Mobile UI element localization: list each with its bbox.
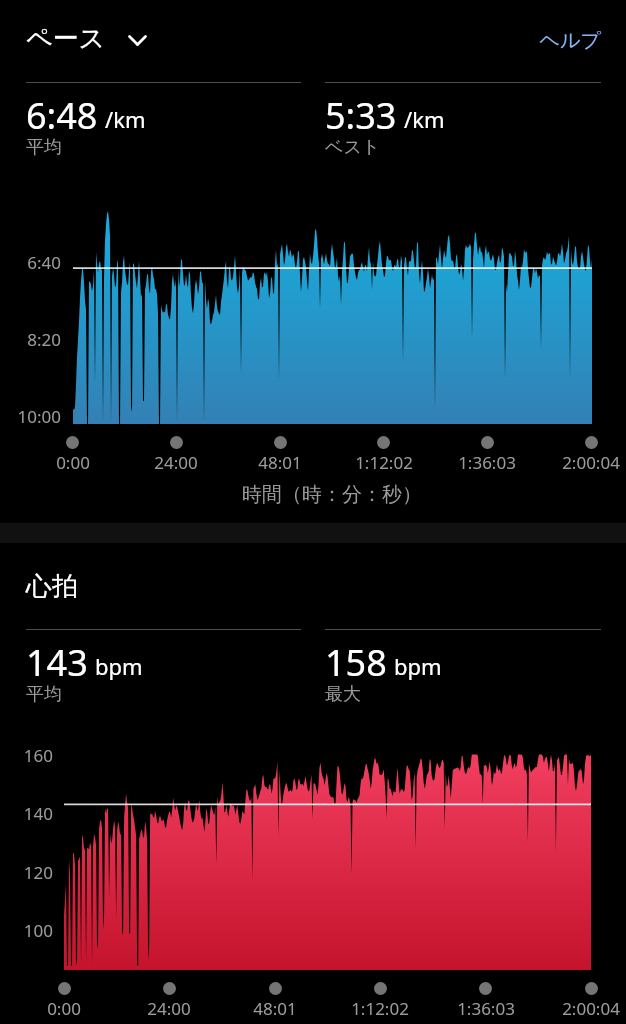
staticText: bpm	[394, 651, 442, 681]
staticText: 140	[0, 802, 53, 825]
staticText: 158	[325, 638, 387, 687]
staticText: 平均	[26, 683, 62, 706]
staticText: 最大	[325, 683, 361, 706]
button[interactable]: ペース	[26, 22, 144, 55]
staticText: /km	[404, 104, 445, 134]
staticText: 100	[0, 919, 53, 942]
staticText: 120	[0, 861, 53, 884]
staticText: ペース	[26, 22, 106, 55]
staticText: 6:48	[26, 91, 98, 140]
staticText: 1:12:02	[334, 451, 434, 474]
staticText: 48:01	[225, 997, 325, 1020]
staticText: /km	[105, 104, 146, 134]
staticText: bpm	[95, 651, 143, 681]
staticText: ベスト	[325, 136, 381, 159]
staticText: 1:36:03	[437, 451, 537, 474]
staticText: 0:00	[23, 451, 123, 474]
staticText: 時間（時：分：秒）	[182, 482, 482, 507]
staticText: 143	[26, 638, 88, 687]
staticText: 8:20	[0, 328, 61, 351]
staticText: 10:00	[0, 405, 61, 428]
staticText: 0:00	[14, 997, 114, 1020]
staticText: 6:40	[0, 251, 61, 274]
staticText: 2:00:04	[541, 451, 626, 474]
staticText: 24:00	[126, 451, 226, 474]
staticText: 心拍	[26, 570, 78, 603]
button[interactable]: ヘルプ	[401, 28, 601, 53]
staticText: 1:12:02	[330, 997, 430, 1020]
staticText: 24:00	[119, 997, 219, 1020]
staticText: 2:00:04	[541, 997, 626, 1020]
staticText: 5:33	[325, 91, 397, 140]
staticText: 48:01	[230, 451, 330, 474]
staticText: 160	[0, 744, 53, 767]
staticText: 平均	[26, 136, 62, 159]
staticText: 1:36:03	[436, 997, 536, 1020]
other: Change metric	[128, 35, 147, 46]
